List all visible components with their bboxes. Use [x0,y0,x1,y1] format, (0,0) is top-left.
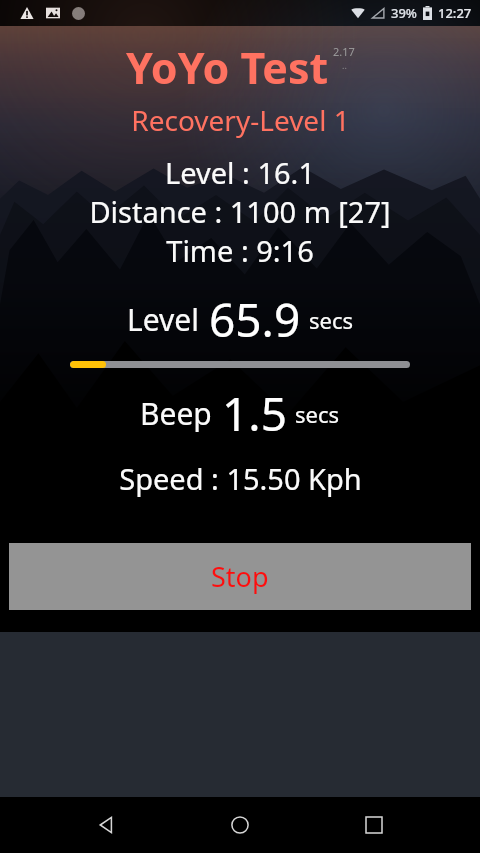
staticText: YoYo Test [126,38,329,97]
button[interactable]: Stop [9,543,471,610]
staticText: Distance : 1100 m [27] [89,192,391,231]
button[interactable]: Back [78,797,134,853]
staticText: Recovery-Level 1 [131,101,350,139]
staticText: .. [342,59,347,71]
staticText: 12:27 [438,4,472,22]
staticText: 39% [391,4,417,22]
staticText: secs [309,305,354,335]
staticText: Stop [211,558,269,595]
staticText: Beep [140,393,212,434]
staticText: 65.9 [209,288,301,351]
staticText: Time : 9:16 [166,231,314,270]
button[interactable]: Home [212,797,268,853]
staticText: 1.5 [222,382,287,445]
button[interactable]: Recent apps [346,797,402,853]
staticText: Level [127,299,199,340]
staticText: secs [295,399,340,429]
staticText: Speed : 15.50 Kph [119,459,362,498]
staticText: Level : 16.1 [165,153,315,192]
staticText: 2.17 [333,44,355,59]
